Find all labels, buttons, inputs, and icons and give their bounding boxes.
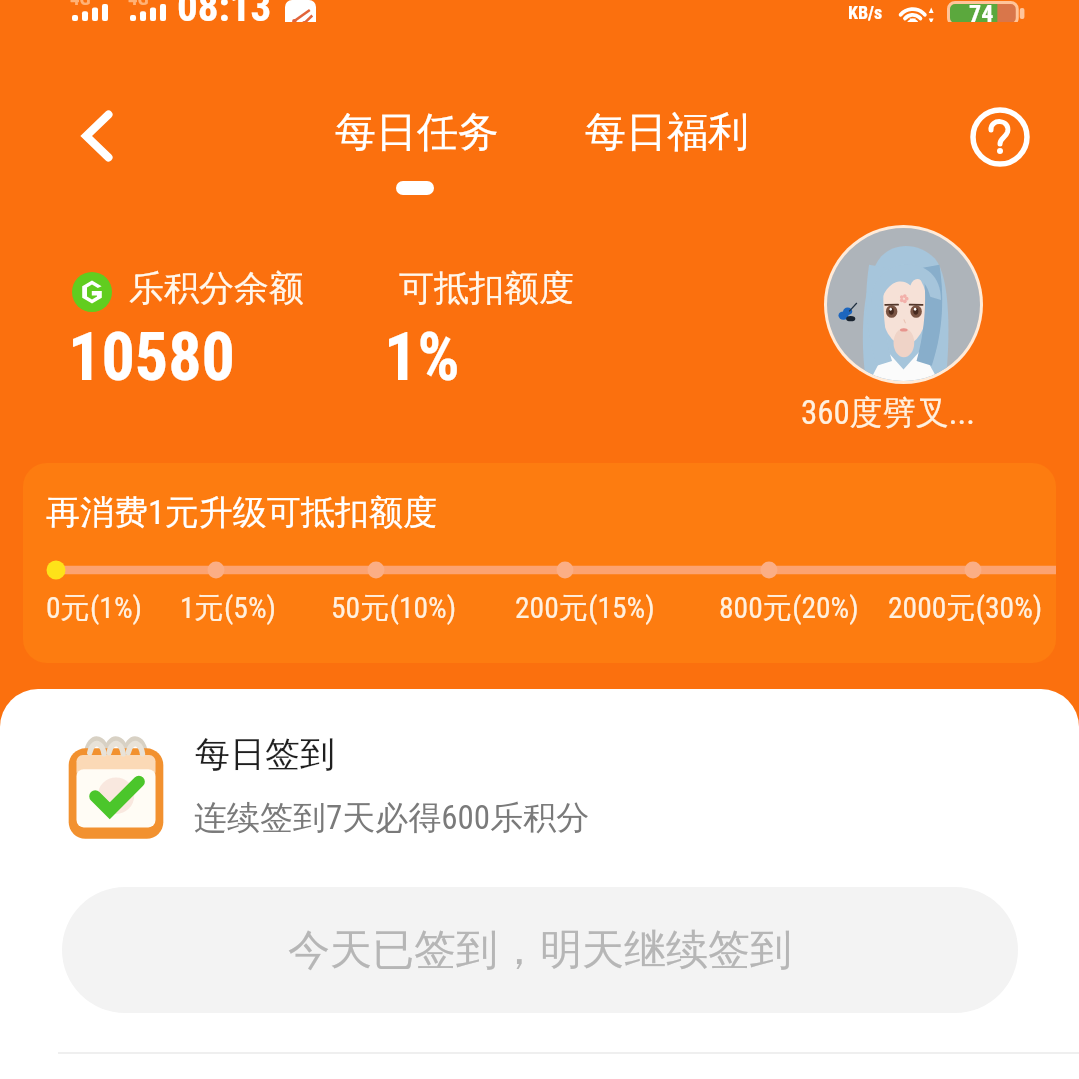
- button[interactable]: Back: [63, 102, 131, 170]
- button[interactable]: 每日任务: [317, 107, 517, 195]
- staticText: 乐积分余额: [129, 266, 304, 310]
- staticText: 74: [969, 0, 994, 22]
- staticText: 2000元(30%): [888, 590, 1043, 627]
- staticText: 1元(5%): [180, 590, 276, 627]
- button[interactable]: 每日福利: [567, 107, 767, 159]
- staticText: 50元(10%): [331, 590, 457, 627]
- staticText: 再消费1元升级可抵扣额度: [46, 491, 437, 534]
- staticText: 4G: [128, 0, 149, 9]
- button[interactable]: 今天已签到，明天继续签到: [62, 887, 1018, 1013]
- staticText: 360度劈叉...: [801, 392, 975, 434]
- staticText: KB/s: [848, 2, 883, 22]
- staticText: 今天已签到，明天继续签到: [288, 924, 792, 977]
- staticText: 200元(15%): [515, 590, 655, 627]
- staticText: 08:13: [177, 0, 272, 22]
- button[interactable]: 再消费1元升级可抵扣额度: [23, 463, 1056, 663]
- staticText: 连续签到7天必得600乐积分: [194, 797, 590, 839]
- staticText: 每日任务: [335, 107, 499, 159]
- button[interactable]: Help: [966, 103, 1034, 171]
- staticText: 800元(20%): [719, 590, 859, 627]
- staticText: 4G: [70, 0, 91, 9]
- staticText: 可抵扣额度: [399, 266, 574, 310]
- button[interactable]: Profile avatar: [824, 225, 983, 384]
- staticText: 每日福利: [585, 107, 749, 159]
- staticText: 每日签到: [195, 732, 335, 776]
- staticText: 0元(1%): [46, 590, 142, 627]
- staticText: 10580: [68, 319, 235, 396]
- staticText: 1%: [384, 319, 460, 396]
